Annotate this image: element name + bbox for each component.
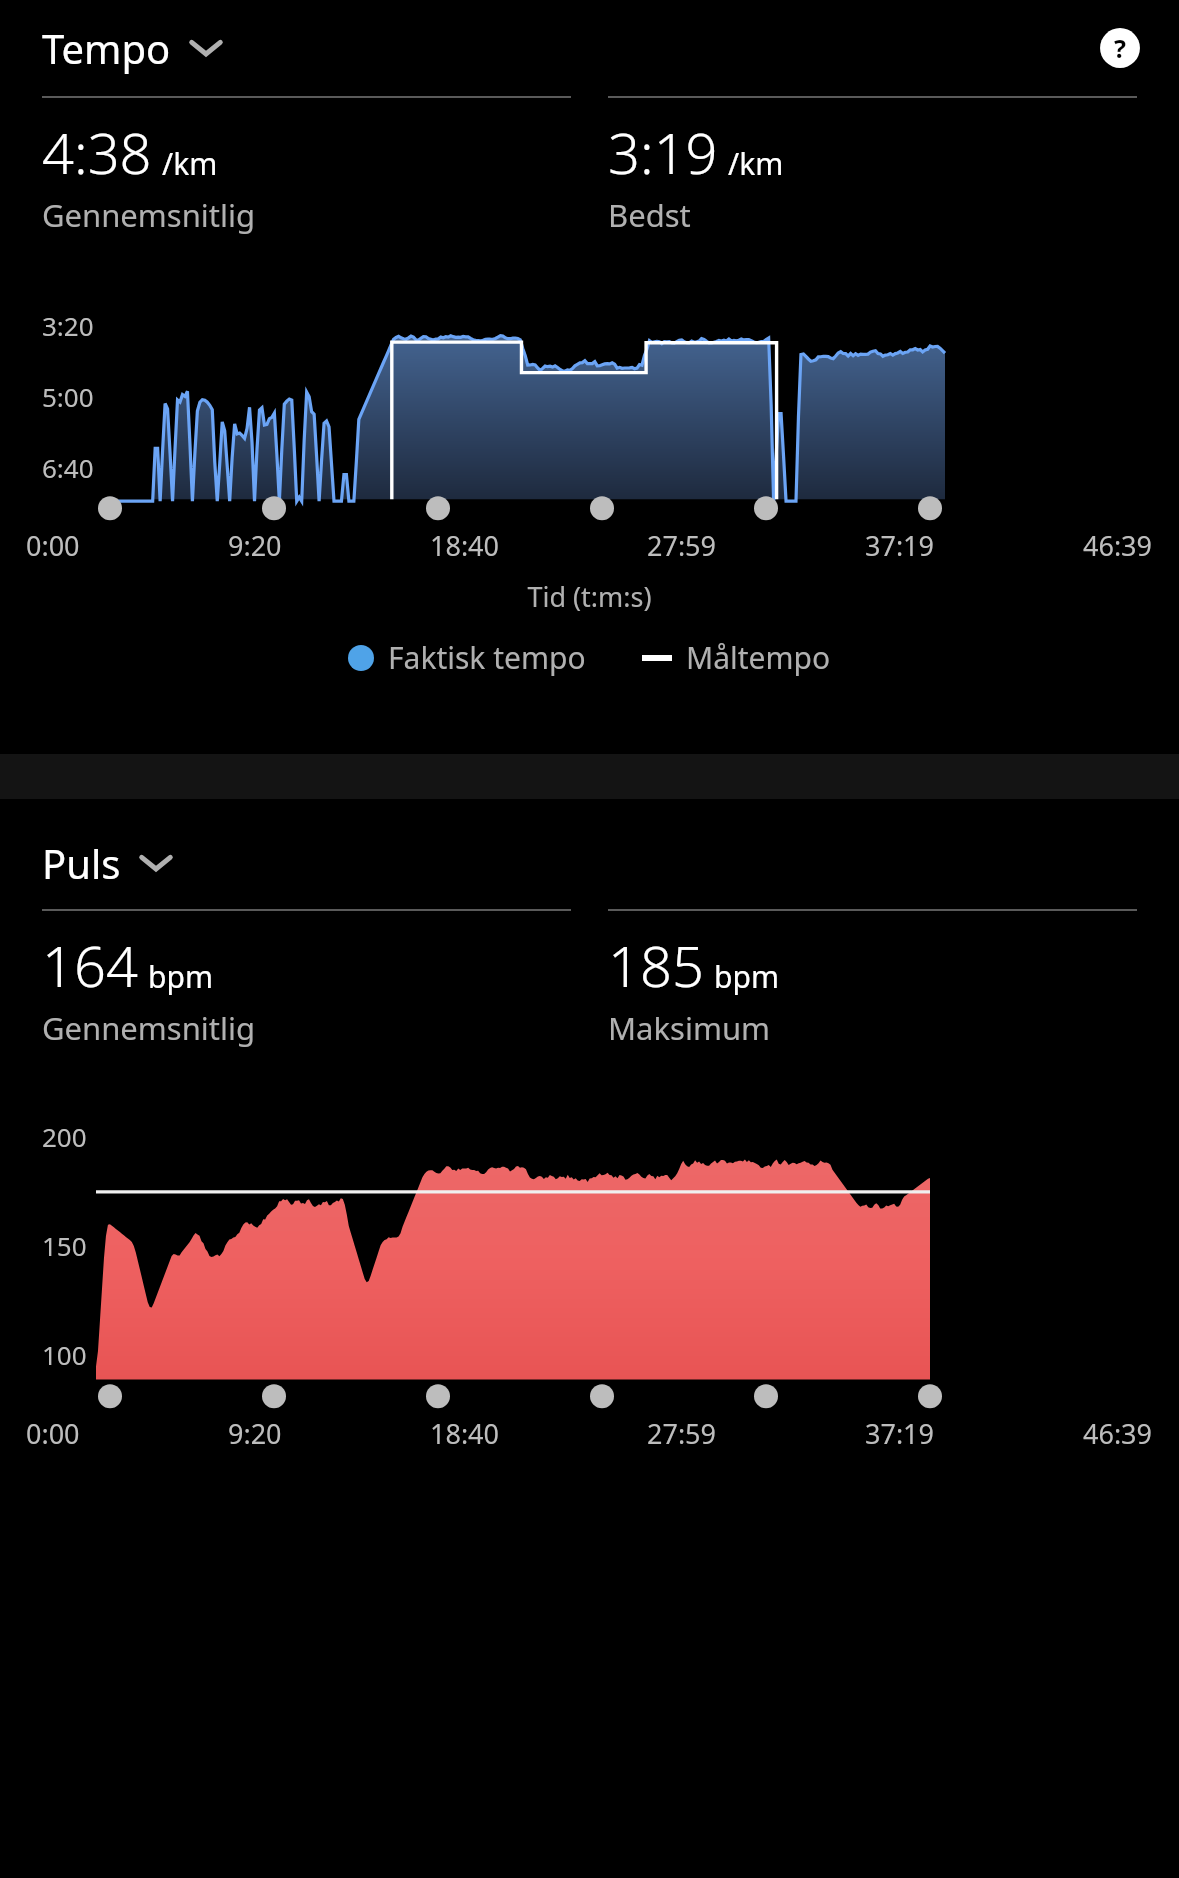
staticText: 27:59	[647, 1415, 717, 1452]
staticText: 185	[608, 927, 704, 1003]
staticText: 9:20	[228, 527, 282, 564]
staticText: Gennemsnitlig	[42, 1007, 256, 1049]
staticText: 18:40	[430, 1415, 500, 1452]
staticText: Måltempo	[686, 637, 831, 678]
staticText: bpm	[148, 956, 213, 997]
button[interactable]: Puls	[42, 836, 181, 890]
staticText: 46:39	[1083, 1415, 1153, 1452]
staticText: 100	[42, 1337, 87, 1372]
staticText: 18:40	[430, 527, 500, 564]
button[interactable]: 164	[42, 927, 571, 1049]
staticText: 46:39	[1083, 527, 1153, 564]
staticText: Gennemsnitlig	[42, 194, 256, 236]
staticText: 37:19	[865, 527, 935, 564]
button[interactable]: Help	[1097, 25, 1143, 71]
staticText: 4:38	[42, 114, 152, 190]
staticText: 0:00	[26, 527, 80, 564]
button[interactable]: 3:19	[608, 114, 1137, 236]
staticText: 37:19	[865, 1415, 935, 1452]
staticText: 3:20	[42, 308, 94, 343]
staticText: 27:59	[647, 527, 717, 564]
button[interactable]: 185	[608, 927, 1137, 1049]
staticText: bpm	[714, 956, 779, 997]
staticText: 150	[42, 1228, 87, 1263]
staticText: 164	[42, 927, 138, 1003]
staticText: /km	[728, 143, 784, 184]
staticText: 5:00	[42, 379, 94, 414]
button[interactable]: 4:38	[42, 114, 571, 236]
button[interactable]: Tempo	[42, 21, 231, 75]
staticText: /km	[162, 143, 218, 184]
staticText: Faktisk tempo	[388, 637, 586, 678]
staticText: Tid (t:m:s)	[0, 578, 1179, 615]
staticText: Tempo	[42, 21, 171, 75]
staticText: 9:20	[228, 1415, 282, 1452]
staticText: 0:00	[26, 1415, 80, 1452]
staticText: Puls	[42, 836, 121, 890]
button[interactable]: Faktisk tempo	[348, 637, 586, 678]
staticText: 3:19	[608, 114, 718, 190]
button[interactable]: Måltempo	[642, 637, 831, 678]
staticText: 6:40	[42, 450, 94, 485]
staticText: 200	[42, 1119, 87, 1154]
staticText: ?	[1114, 31, 1126, 65]
staticText: Bedst	[608, 194, 691, 236]
staticText: Maksimum	[608, 1007, 771, 1049]
